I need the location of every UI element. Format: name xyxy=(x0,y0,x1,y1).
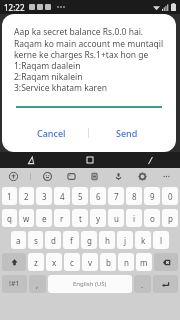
button[interactable]: 4 xyxy=(54,187,70,205)
staticText: j xyxy=(124,235,127,246)
button[interactable]: Send xyxy=(89,122,164,144)
button[interactable]: m xyxy=(136,253,152,271)
staticText: Cancel xyxy=(37,127,66,139)
staticText: , xyxy=(36,279,39,290)
staticText: o xyxy=(150,213,155,224)
button[interactable]: s xyxy=(28,231,43,249)
button[interactable]: p xyxy=(162,209,178,227)
button[interactable]: Settings xyxy=(135,169,150,184)
staticText: a xyxy=(16,235,21,246)
button[interactable]: h xyxy=(99,231,115,249)
staticText: k xyxy=(141,235,146,246)
staticText: y xyxy=(96,213,101,224)
staticText: i xyxy=(133,213,136,224)
button[interactable]: Shift xyxy=(2,253,26,271)
button[interactable]: Cancel xyxy=(14,122,88,144)
button[interactable]: b xyxy=(100,253,116,271)
staticText: 2 xyxy=(24,191,29,202)
staticText: w xyxy=(23,213,30,224)
staticText: l xyxy=(160,235,163,246)
button[interactable]: Stickers xyxy=(64,169,79,184)
staticText: 8 xyxy=(132,191,137,202)
staticText: 3 xyxy=(42,191,47,202)
button[interactable]: f xyxy=(63,231,79,249)
button[interactable]: Home xyxy=(60,152,120,168)
button[interactable]: 0 xyxy=(162,187,178,205)
button[interactable]: 8 xyxy=(126,187,142,205)
staticText: 12:22 xyxy=(4,2,25,13)
staticText: 1 xyxy=(7,191,12,202)
staticText: 4 xyxy=(60,191,65,202)
staticText: 0 xyxy=(168,191,173,202)
button[interactable]: n xyxy=(118,253,134,271)
button[interactable]: i xyxy=(126,209,142,227)
button[interactable]: 5 xyxy=(72,187,88,205)
button[interactable]: Recent apps xyxy=(120,152,180,168)
button[interactable]: r xyxy=(54,209,70,227)
staticText: Aap ka secret balance Rs.0.0 hai. Raqam … xyxy=(14,26,164,94)
button[interactable]: z xyxy=(28,253,44,271)
button[interactable]: Voice input xyxy=(111,169,126,184)
button[interactable]: e xyxy=(36,209,52,227)
button[interactable]: 7 xyxy=(108,187,124,205)
staticText: 6 xyxy=(96,191,101,202)
button[interactable]: c xyxy=(64,253,80,271)
button[interactable]: 3 xyxy=(36,187,52,205)
button[interactable]: y xyxy=(90,209,106,227)
staticText: English (US) xyxy=(73,280,107,288)
button[interactable]: k xyxy=(135,231,151,249)
button[interactable]: Enter xyxy=(153,275,178,293)
staticText: . xyxy=(141,279,144,290)
button[interactable]: Back xyxy=(0,152,60,168)
button[interactable]: 6 xyxy=(90,187,106,205)
button[interactable]: w xyxy=(19,209,34,227)
button[interactable]: Clipboard xyxy=(87,169,102,184)
button[interactable]: l xyxy=(153,231,169,249)
staticText: f xyxy=(70,235,73,246)
button[interactable]: 1 xyxy=(2,187,17,205)
staticText: h xyxy=(105,235,110,246)
button[interactable]: More options xyxy=(159,169,174,184)
staticText: c xyxy=(70,257,74,268)
button[interactable]: !#1 xyxy=(2,275,27,293)
button[interactable]: u xyxy=(108,209,124,227)
button[interactable]: 9 xyxy=(144,187,160,205)
button[interactable]: , xyxy=(29,275,46,293)
staticText: 9 xyxy=(150,191,155,202)
staticText: !#1 xyxy=(9,279,20,289)
button[interactable]: Google search xyxy=(6,169,21,184)
button[interactable]: a xyxy=(11,231,26,249)
button[interactable]: Emoji xyxy=(40,169,55,184)
staticText: s xyxy=(34,235,38,246)
button[interactable]: o xyxy=(144,209,160,227)
staticText: m xyxy=(140,257,148,268)
button[interactable]: . xyxy=(134,275,151,293)
button[interactable]: g xyxy=(81,231,97,249)
staticText: v xyxy=(88,257,93,268)
staticText: x xyxy=(52,257,57,268)
staticText: 7 xyxy=(114,191,119,202)
staticText: u xyxy=(114,213,119,224)
staticText: d xyxy=(51,235,56,246)
button[interactable]: 2 xyxy=(19,187,34,205)
button[interactable]: q xyxy=(2,209,17,227)
staticText: e xyxy=(42,213,47,224)
staticText: n xyxy=(124,257,129,268)
button[interactable]: English (US) xyxy=(48,275,132,293)
staticText: b xyxy=(106,257,111,268)
button[interactable]: Backspace xyxy=(154,253,178,271)
staticText: 5 xyxy=(78,191,83,202)
staticText: p xyxy=(168,213,173,224)
button[interactable]: j xyxy=(117,231,133,249)
staticText: Send xyxy=(116,127,138,139)
staticText: z xyxy=(34,257,38,268)
staticText: t xyxy=(79,213,82,224)
button[interactable]: d xyxy=(45,231,61,249)
button[interactable]: x xyxy=(46,253,62,271)
staticText: g xyxy=(87,235,92,246)
staticText: r xyxy=(60,213,64,224)
staticText: q xyxy=(7,213,12,224)
button[interactable]: v xyxy=(82,253,98,271)
button[interactable]: t xyxy=(72,209,88,227)
